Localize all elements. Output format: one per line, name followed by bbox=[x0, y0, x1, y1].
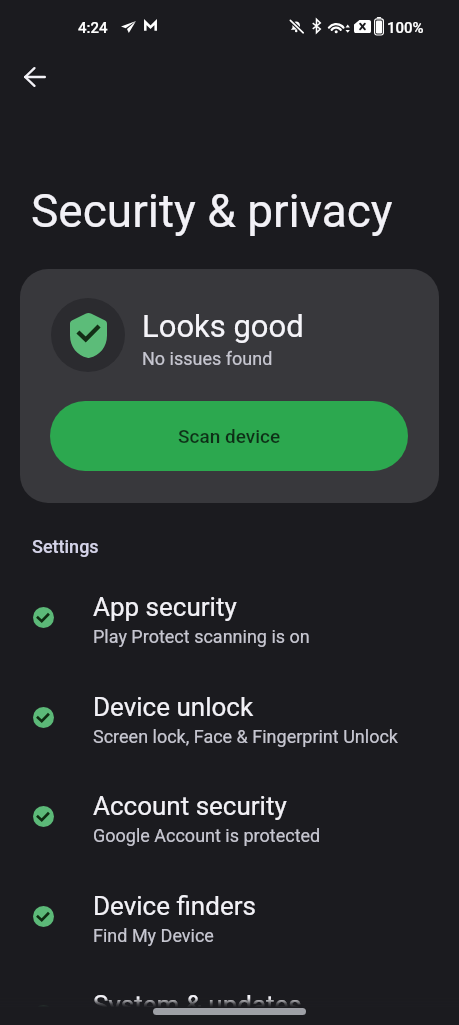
staticText: Looks good bbox=[142, 308, 304, 344]
staticText: Screen lock, Face & Fingerprint Unlock bbox=[93, 726, 398, 747]
staticText: Device finders bbox=[93, 891, 256, 921]
staticText: Google Account is protected bbox=[93, 825, 321, 846]
button[interactable]: Looks good bbox=[20, 269, 439, 503]
button[interactable]: Device unlock bbox=[0, 680, 459, 772]
staticText: 100% bbox=[387, 19, 424, 37]
button[interactable]: System & updates bbox=[0, 978, 459, 1025]
staticText: Device unlock bbox=[93, 692, 254, 722]
staticText: Account security bbox=[93, 791, 287, 821]
button[interactable]: Account security bbox=[0, 779, 459, 871]
button[interactable]: Scan device bbox=[50, 401, 408, 471]
staticText: App security bbox=[93, 592, 237, 622]
staticText: 4:24 bbox=[78, 19, 108, 37]
staticText: Find My Device bbox=[93, 925, 214, 946]
button[interactable]: App security bbox=[0, 580, 459, 672]
staticText: System & updates bbox=[93, 990, 302, 1020]
staticText: No issues found bbox=[142, 348, 273, 369]
staticText: Security & privacy bbox=[31, 184, 393, 238]
staticText: Settings bbox=[32, 536, 99, 557]
staticText: Scan device bbox=[178, 425, 281, 447]
button[interactable]: Back bbox=[13, 55, 57, 99]
staticText: Play Protect scanning is on bbox=[93, 626, 310, 647]
button[interactable]: Device finders bbox=[0, 879, 459, 971]
